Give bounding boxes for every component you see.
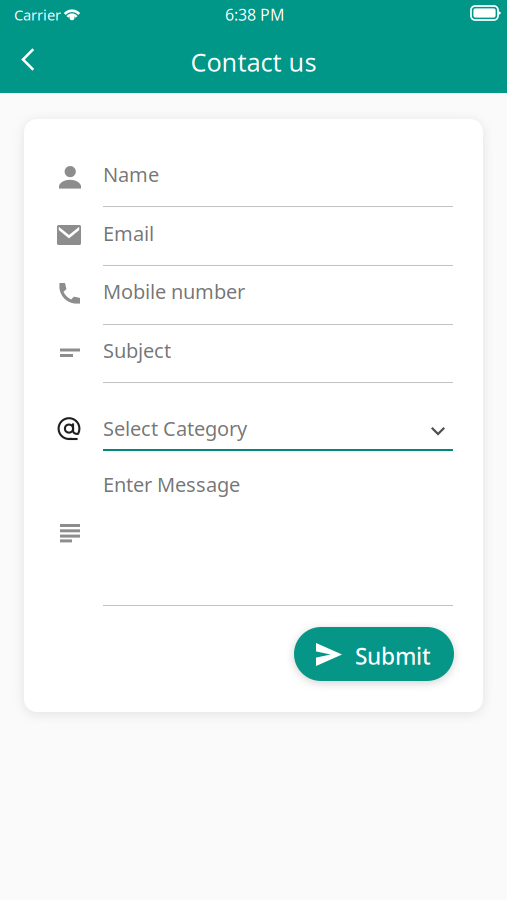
button[interactable]: Submit	[294, 627, 454, 681]
staticText: Name	[103, 161, 159, 188]
button[interactable]: Mobile number	[24, 272, 483, 325]
staticText: Select Category	[103, 415, 247, 442]
staticText: Email	[103, 220, 154, 247]
button[interactable]: Back	[8, 40, 52, 84]
staticText: Subject	[103, 337, 171, 364]
button[interactable]: Subject	[24, 331, 483, 383]
staticText: Mobile number	[103, 278, 245, 305]
button[interactable]: Name	[24, 158, 483, 207]
staticText: Carrier	[14, 5, 61, 24]
staticText: Submit	[355, 641, 431, 671]
staticText: Enter Message	[103, 471, 240, 498]
button[interactable]: Email	[24, 214, 483, 266]
button[interactable]: Select Category	[24, 406, 483, 451]
staticText: Contact us	[190, 45, 316, 79]
button[interactable]: Enter Message	[24, 464, 483, 606]
staticText: 6:38 PM	[225, 4, 285, 25]
